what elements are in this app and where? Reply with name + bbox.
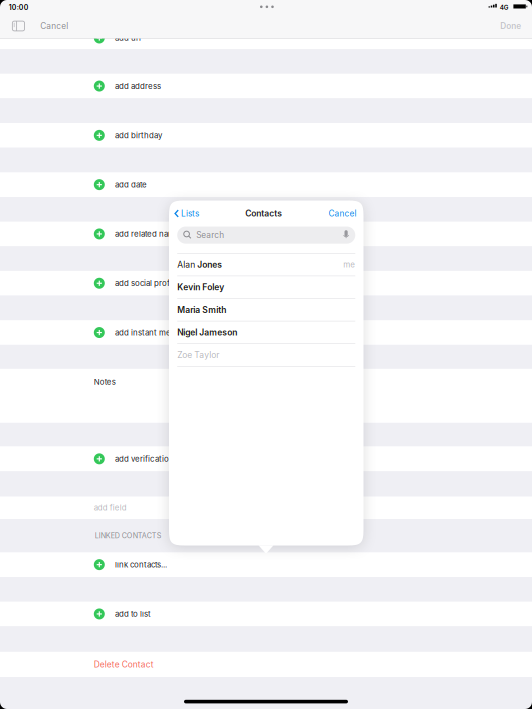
button[interactable]: Cancel	[40, 14, 72, 38]
staticText: LINKED CONTACTS	[95, 531, 162, 540]
button[interactable]: add verification code	[0, 446, 532, 471]
button[interactable]: Cancel	[328, 205, 356, 222]
staticText: 10:00	[9, 3, 29, 12]
button[interactable]: Kevin Foley	[169, 276, 363, 299]
button[interactable]: Lists	[174, 205, 199, 222]
staticText: Maria Smith	[177, 305, 226, 315]
button[interactable]: add address	[0, 74, 532, 98]
staticText: Lists	[181, 208, 199, 218]
staticText: Alan Jones	[177, 260, 222, 270]
button[interactable]: add instant message	[0, 320, 532, 345]
staticText: Nigel Jameson	[177, 327, 237, 337]
staticText: Kevin Foley	[177, 282, 224, 292]
staticText: Delete Contact	[94, 659, 154, 669]
staticText: add social profile	[115, 278, 179, 288]
button[interactable]: add field	[0, 496, 532, 519]
button[interactable]: Zoe Taylor	[169, 344, 363, 367]
staticText: Cancel	[40, 21, 68, 31]
button[interactable]: Delete Contact	[0, 652, 532, 677]
staticText: add field	[94, 503, 127, 512]
staticText: add url	[115, 33, 141, 43]
button[interactable]: add to list	[0, 602, 532, 626]
staticText: Contacts	[245, 208, 282, 219]
staticText: add instant message	[115, 328, 193, 337]
button[interactable]: Notes	[0, 369, 532, 423]
staticText: Done	[500, 21, 521, 31]
button[interactable]: add related name	[0, 222, 532, 246]
button[interactable]: Maria Smith	[169, 299, 363, 321]
button[interactable]: link contacts...	[0, 552, 532, 577]
button[interactable]: Alan Jones	[169, 254, 363, 276]
staticText: Cancel	[328, 208, 356, 218]
staticText: 4G	[500, 4, 509, 11]
staticText: add to list	[115, 609, 151, 619]
button[interactable]: add url	[0, 24, 532, 49]
staticText: add verification code	[115, 454, 195, 464]
button[interactable]: Nigel Jameson	[169, 321, 363, 344]
staticText: add address	[115, 81, 161, 91]
staticText: add date	[115, 180, 147, 189]
staticText: link contacts...	[115, 560, 167, 569]
staticText: add birthday	[115, 131, 162, 140]
staticText: me	[343, 260, 355, 269]
staticText: add related name	[115, 229, 180, 239]
button[interactable]: Done	[500, 14, 521, 38]
staticText: Notes	[94, 377, 116, 386]
button[interactable]: Show sidebar	[12, 14, 25, 38]
staticText: Search	[196, 230, 224, 240]
button[interactable]: add social profile	[0, 271, 532, 296]
button[interactable]: add date	[0, 172, 532, 197]
button[interactable]: add birthday	[0, 123, 532, 148]
staticText: Zoe Taylor	[177, 350, 219, 360]
